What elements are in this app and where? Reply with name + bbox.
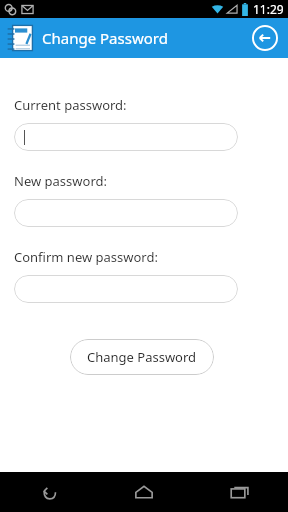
button[interactable]: Password input: [14, 275, 238, 303]
staticText: Change Password: [87, 348, 197, 366]
staticText: 11:29: [253, 1, 284, 17]
staticText: Current password:: [14, 96, 127, 114]
button[interactable]: Home: [96, 472, 192, 512]
button[interactable]: Password input: [14, 199, 238, 227]
button[interactable]: Change Password: [70, 339, 214, 375]
button[interactable]: Back: [250, 23, 280, 53]
staticText: Confirm new password:: [14, 248, 158, 266]
button[interactable]: Back: [0, 472, 96, 512]
button[interactable]: Password input: [14, 123, 238, 151]
staticText: New password:: [14, 172, 107, 190]
button[interactable]: Recent apps: [192, 472, 288, 512]
staticText: Change Password: [42, 28, 168, 48]
